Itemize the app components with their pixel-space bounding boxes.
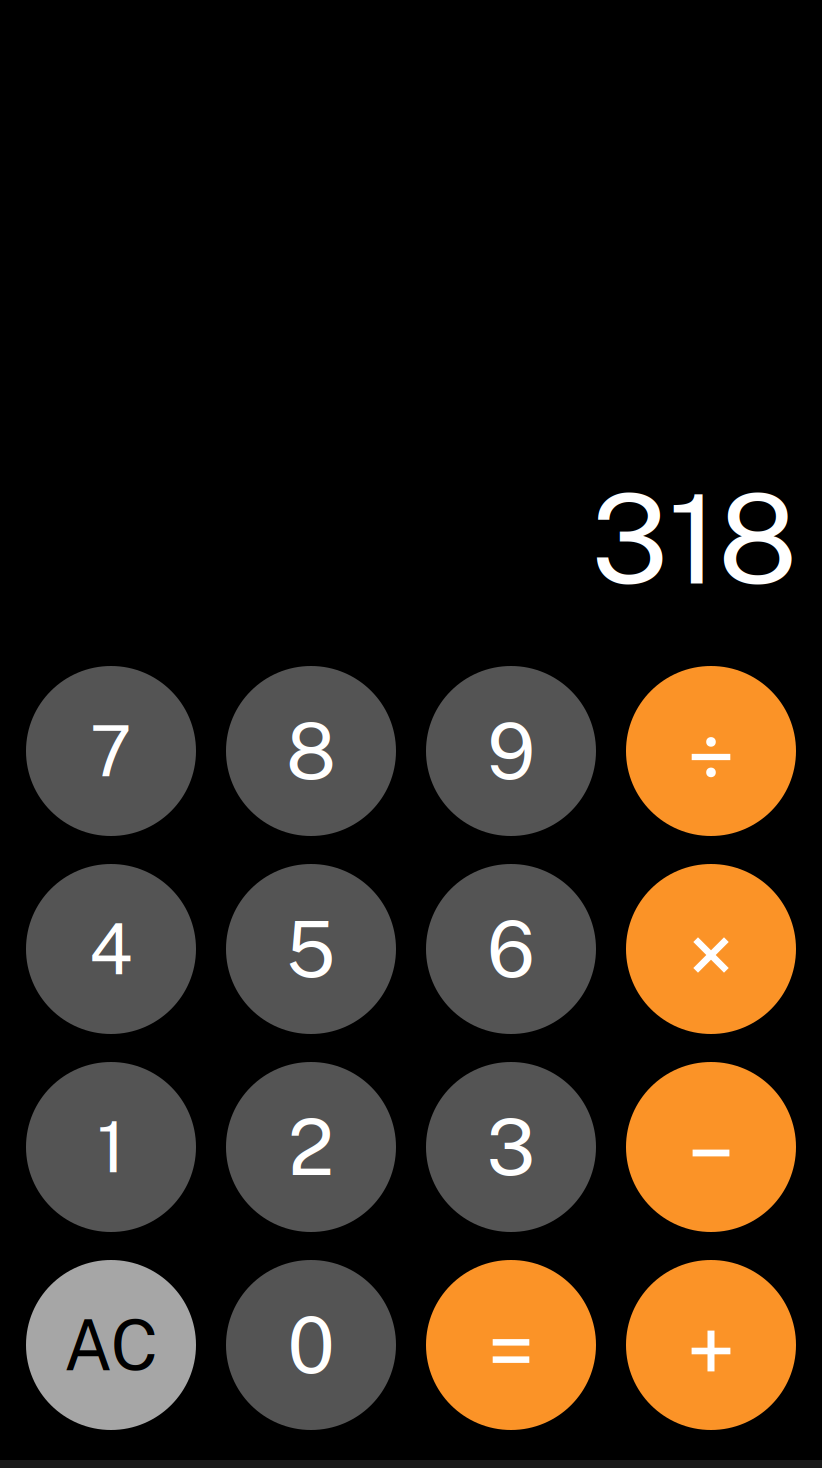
staticText: 6 (487, 904, 535, 994)
staticText: 2 (288, 1102, 334, 1192)
staticText: 5 (286, 904, 336, 994)
button[interactable]: 1 (26, 1062, 196, 1232)
button[interactable]: 5 (226, 864, 396, 1034)
staticText: 9 (487, 706, 535, 796)
staticText: AC (63, 1304, 158, 1386)
button[interactable]: Divide (626, 666, 796, 836)
button[interactable]: 3 (426, 1062, 596, 1232)
button[interactable]: 2 (226, 1062, 396, 1232)
staticText: 8 (286, 706, 336, 796)
button[interactable]: 6 (426, 864, 596, 1034)
button[interactable]: Multiply (626, 864, 796, 1034)
staticText: 318 (591, 467, 797, 611)
staticText: 3 (486, 1102, 535, 1192)
button[interactable]: 7 (26, 666, 196, 836)
button[interactable]: 4 (26, 864, 196, 1034)
button[interactable]: 9 (426, 666, 596, 836)
button[interactable]: Equals (426, 1260, 596, 1430)
staticText: 1 (97, 1106, 125, 1188)
staticText: 4 (89, 908, 133, 990)
button[interactable]: AC (26, 1260, 196, 1430)
staticText: 0 (287, 1300, 334, 1390)
staticText: 7 (90, 710, 132, 792)
button[interactable]: 0 (226, 1260, 396, 1430)
button[interactable]: Subtract (626, 1062, 796, 1232)
button[interactable]: Add (626, 1260, 796, 1430)
button[interactable]: 8 (226, 666, 396, 836)
